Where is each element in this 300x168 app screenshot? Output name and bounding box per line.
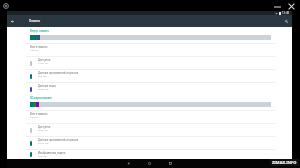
button[interactable]: Close [288,3,295,10]
staticText: Всего память [30,112,48,116]
button[interactable]: Всего память [7,111,292,123]
button[interactable]: Данные кеша [7,83,292,95]
button[interactable]: Доступно [7,124,292,136]
staticText: 13:48 [282,11,290,15]
button[interactable]: Изображения, видео [7,150,292,159]
staticText: Изображения, видео [38,151,66,155]
staticText: 7.60 ГБ [30,48,39,51]
button[interactable]: Данные приложений и прочие [7,70,292,82]
staticText: Данные приложений и прочие [38,71,79,75]
staticText: 7.60 ГБ [30,115,39,118]
staticText: SD-карта память [30,96,53,100]
button[interactable]: Minimize [274,4,281,10]
staticText: 285 МБ [38,74,47,77]
staticText: Внутр. память [30,29,49,33]
button[interactable]: Back [7,15,18,27]
staticText: Данные приложений и прочие [38,138,79,142]
staticText: Доступно [38,58,51,62]
staticText: 186 МБ [38,154,47,157]
staticText: Данные кеша [38,84,56,88]
staticText: ZIMAK.INFO [272,160,297,165]
button[interactable]: Доступно [7,57,292,69]
staticText: Память [29,19,41,23]
staticText: 24.22 МБ [38,141,49,144]
staticText: Всего память [30,45,48,49]
staticText: 14.21 ГБ [38,61,48,64]
button[interactable]: Search [281,15,292,27]
button[interactable]: Home [143,159,156,168]
staticText: 48.08 МБ [38,87,49,90]
button[interactable]: Всего память [7,44,292,56]
button[interactable]: Back [122,159,135,168]
button[interactable]: Recent apps [164,159,177,168]
button[interactable]: Внутр. память [30,29,271,33]
staticText: 10.81 ГБ [38,128,48,131]
button[interactable]: SD-карта память [30,96,271,100]
staticText: Доступно [38,125,51,129]
button[interactable]: Данные приложений и прочие [7,137,292,149]
other: App icon [3,3,9,9]
